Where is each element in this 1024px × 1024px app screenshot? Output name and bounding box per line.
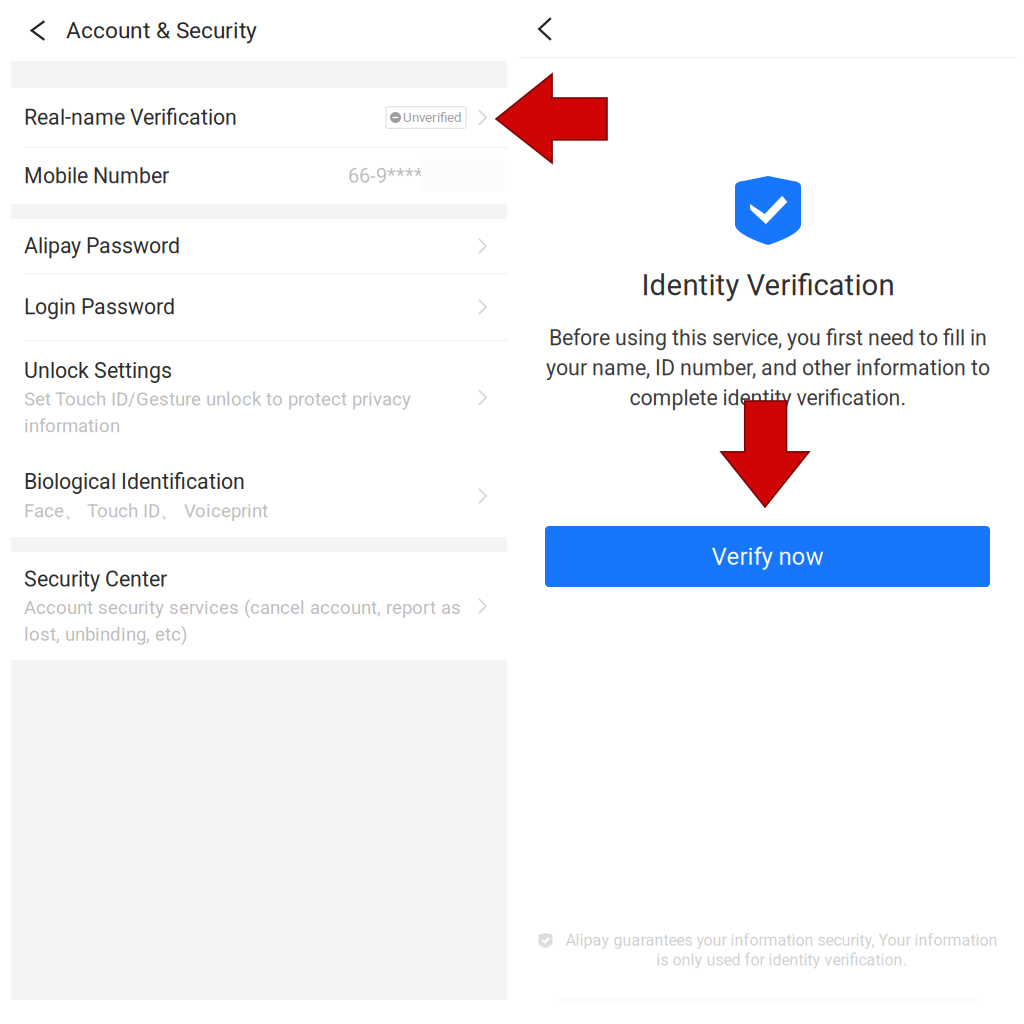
staticText: Mobile Number xyxy=(24,163,169,188)
staticText: Verify now xyxy=(711,542,823,570)
staticText: Unlock Settings xyxy=(24,358,172,383)
staticText: Alipay guarantees your information secur… xyxy=(565,931,997,950)
staticText: Login Password xyxy=(24,294,175,319)
button[interactable]: Back xyxy=(525,0,565,58)
button[interactable]: Verify now xyxy=(545,526,990,587)
staticText: Security Center xyxy=(24,567,167,592)
staticText: Account security services (cancel accoun… xyxy=(24,597,461,645)
button[interactable]: Mobile Number xyxy=(11,148,507,204)
button[interactable]: Unlock Settings xyxy=(11,341,507,454)
staticText: your name, ID number, and other informat… xyxy=(546,355,990,380)
staticText: Unverified xyxy=(403,110,462,125)
button[interactable]: Real-name Verification xyxy=(11,88,507,147)
staticText: 66-9**** xyxy=(348,164,423,188)
staticText: is only used for identity verification. xyxy=(656,951,906,970)
button[interactable]: Security Center xyxy=(11,552,507,660)
staticText: Alipay Password xyxy=(24,233,180,258)
staticText: Set Touch ID/Gesture unlock to protect p… xyxy=(24,388,411,437)
staticText: Before using this service, you first nee… xyxy=(549,325,987,350)
button[interactable]: Back xyxy=(21,0,55,61)
staticText: Real-name Verification xyxy=(24,105,237,130)
staticText: Face、 Touch ID、 Voiceprint xyxy=(24,499,268,523)
staticText: Biological Identification xyxy=(24,469,245,494)
staticText: Identity Verification xyxy=(641,268,894,302)
staticText: complete identity verification. xyxy=(629,385,906,410)
button[interactable]: Biological Identification xyxy=(11,455,507,537)
button[interactable]: Login Password xyxy=(11,274,507,340)
staticText: Account & Security xyxy=(66,17,257,44)
button[interactable]: Alipay Password xyxy=(11,219,507,273)
